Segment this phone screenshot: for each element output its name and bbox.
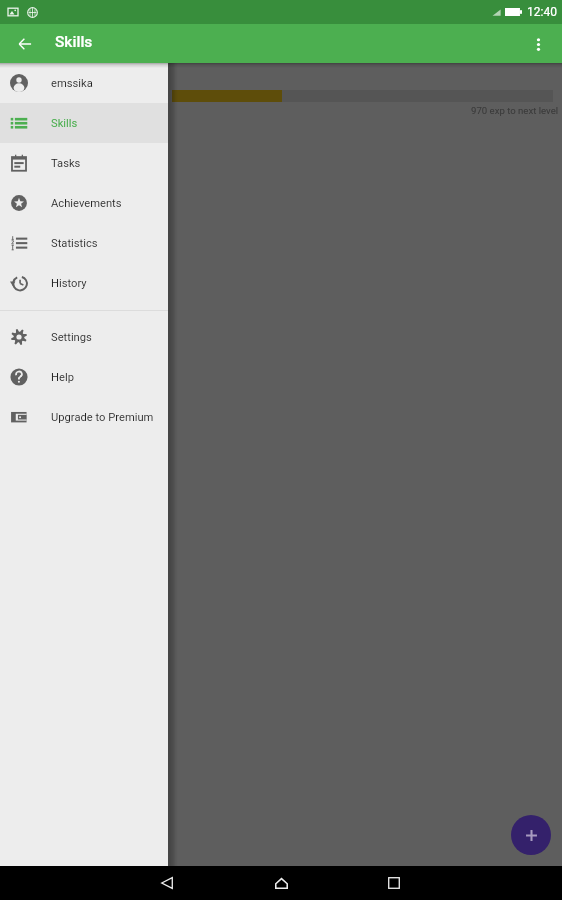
button[interactable]: Back — [8, 27, 42, 61]
staticText: Upgrade to Premium — [51, 411, 154, 424]
button[interactable]: Tasks — [0, 143, 168, 183]
staticText: 970 exp to next level — [471, 105, 559, 116]
button[interactable]: Upgrade to Premium — [0, 397, 168, 437]
staticText: Tasks — [51, 157, 81, 170]
staticText: Settings — [51, 331, 92, 344]
button[interactable]: Add — [511, 815, 551, 855]
staticText: Help — [51, 371, 74, 384]
button[interactable]: Settings — [0, 317, 168, 357]
staticText: emssika — [51, 77, 93, 90]
button[interactable]: Back — [145, 866, 189, 900]
staticText: 12:40 — [527, 5, 557, 19]
button[interactable]: Achievements — [0, 183, 168, 223]
button[interactable]: Help — [0, 357, 168, 397]
staticText: Achievements — [51, 197, 122, 210]
staticText: Statistics — [51, 237, 98, 250]
button[interactable]: History — [0, 263, 168, 303]
button[interactable]: emssika — [0, 63, 168, 103]
staticText: Skills — [55, 33, 93, 51]
staticText: Skills — [51, 117, 78, 130]
button[interactable]: More options — [522, 28, 554, 60]
button[interactable]: Recents — [372, 866, 416, 900]
button[interactable]: Close navigation drawer — [0, 0, 562, 900]
staticText: History — [51, 277, 87, 290]
button[interactable]: Home — [259, 866, 303, 900]
button[interactable]: Skills — [0, 103, 168, 143]
button[interactable]: Statistics — [0, 223, 168, 263]
